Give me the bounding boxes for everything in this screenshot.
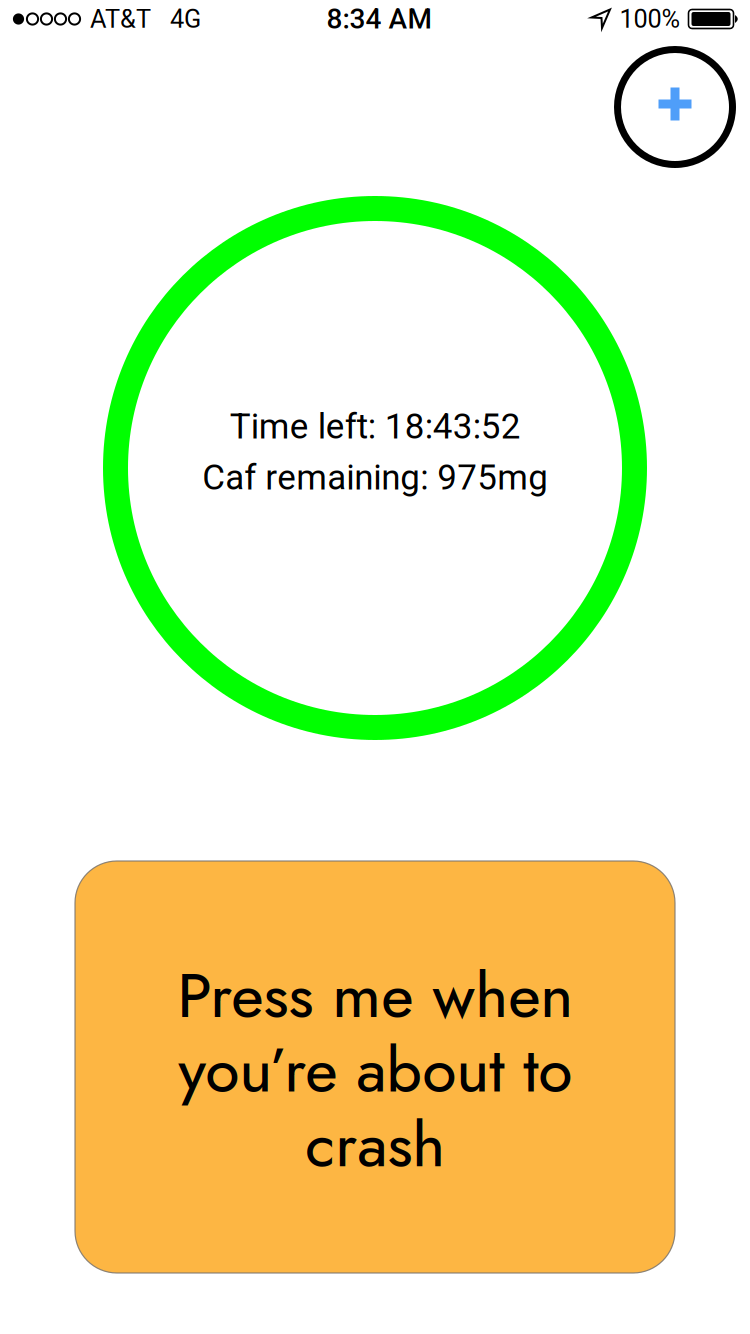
button[interactable]: Add caffeine [614,46,736,168]
staticText: 100% [619,4,680,34]
staticText: Time left: 18:43:52 Caf remaining: 975mg [202,406,548,498]
staticText: 4G [170,4,201,34]
staticText: 8:34 AM [326,3,431,35]
button[interactable]: Press me when you’re about to crash [75,861,675,1273]
staticText: Press me when you’re about to crash [177,951,573,1189]
staticText: AT&T [90,4,151,34]
